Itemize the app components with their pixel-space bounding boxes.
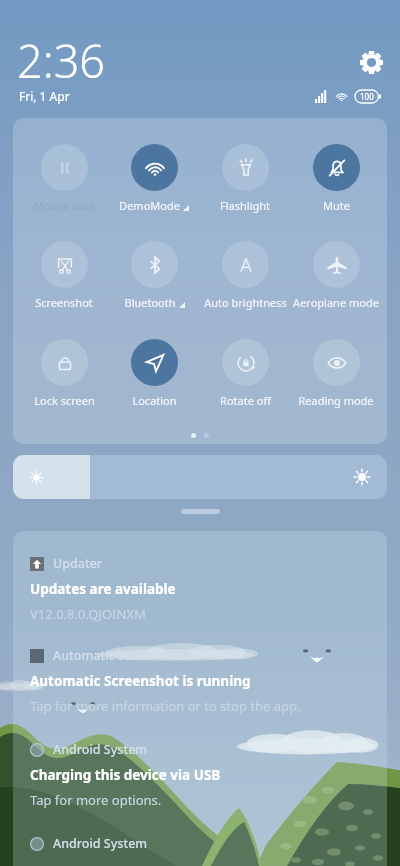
button[interactable]: Settings [355,46,387,78]
button[interactable]: Brightness [13,455,387,499]
staticText: Reading mode [298,393,374,408]
button[interactable]: Rotate off [200,339,290,409]
staticText: Lock screen [34,393,95,408]
staticText: Fri, 1 Apr [19,88,70,104]
staticText: Mute [323,198,350,213]
button[interactable]: Auto brightness [200,241,290,311]
button[interactable]: Lock screen [19,339,109,409]
staticText: Auto brightness [204,295,287,310]
button[interactable]: Mobile data [19,144,109,214]
button[interactable]: Bluetooth [109,241,199,311]
staticText: Location [132,393,177,408]
button[interactable]: Android System [30,835,387,859]
button[interactable]: Screenshot [19,241,109,311]
staticText: Automatic Screenshot is running [30,672,251,690]
staticText: Screenshot [35,295,93,310]
staticText: Android System [53,835,148,852]
staticText: Updater [53,555,103,572]
button[interactable]: Android System [30,741,387,821]
staticText: Tap for more information or to stop the … [30,697,301,715]
staticText: Automatic Screenshot [53,647,185,664]
staticText: Aeroplane mode [293,295,379,310]
button[interactable]: Automatic Screenshot [30,647,387,727]
staticText: Rotate off [220,393,271,408]
staticText: Updates are available [30,580,176,598]
staticText: DemoMode [119,198,180,213]
button[interactable]: Updater [30,555,387,635]
staticText: Mobile data [33,198,95,213]
staticText: Bluetooth [124,295,176,310]
button[interactable]: Mute [291,144,381,214]
button[interactable]: Aeroplane mode [291,241,381,311]
staticText: Tap for more options. [30,791,162,809]
button[interactable]: Location [109,339,199,409]
staticText: 100 [360,91,374,102]
staticText: Charging this device via USB [30,766,221,784]
button[interactable]: Reading mode [291,339,381,409]
staticText: Flashlight [220,198,270,213]
staticText: V12.0.8.0.QJOINXM [30,605,146,623]
staticText: 2:36 [17,30,106,91]
button[interactable]: DemoMode [109,144,199,214]
button[interactable]: Flashlight [200,144,290,214]
staticText: Android System [53,741,148,758]
